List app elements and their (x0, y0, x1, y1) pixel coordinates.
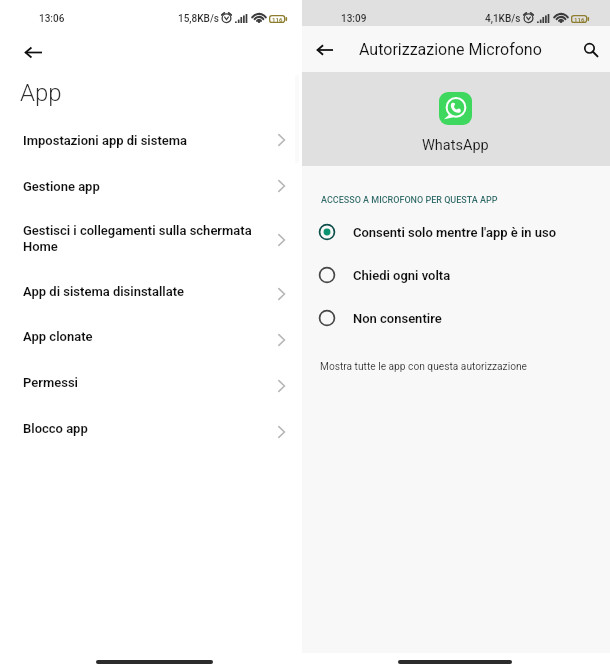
staticText: Gestisci i collegamenti sulla schermata … (23, 223, 263, 254)
staticText: Blocco app (23, 421, 88, 436)
button[interactable]: Permessi (0, 363, 302, 409)
button[interactable]: Blocco app (0, 409, 302, 455)
staticText: Permessi (23, 375, 78, 390)
button[interactable]: App clonate (0, 317, 302, 363)
staticText: App clonate (23, 329, 93, 344)
staticText: App di sistema disinstallate (23, 284, 185, 299)
staticText: Gestione app (23, 179, 100, 194)
staticText: 116 (272, 16, 283, 23)
staticText: Consenti solo mentre l'app è in uso (353, 225, 557, 240)
button[interactable]: Mostra tutte le app con questa autorizza… (320, 361, 527, 373)
staticText: 13:06 (39, 13, 65, 25)
staticText: 15,8KB/s (178, 13, 219, 25)
staticText: Non consentire (353, 311, 442, 326)
button[interactable]: Non consentire (302, 296, 610, 339)
button[interactable]: App di sistema disinstallate (0, 271, 302, 317)
button[interactable]: Back (18, 37, 48, 67)
staticText: Autorizzazione Microfono (359, 40, 542, 59)
staticText: 116 (574, 16, 585, 23)
staticText: 13:09 (341, 13, 367, 25)
button[interactable]: Search (576, 35, 606, 65)
staticText: Chiedi ogni volta (353, 268, 451, 283)
staticText: Impostazioni app di sistema (23, 133, 188, 148)
staticText: 4,1KB/s (485, 13, 521, 25)
button[interactable]: Consenti solo mentre l'app è in uso (302, 210, 610, 253)
staticText: ACCESSO A MICROFONO PER QUESTA APP (321, 195, 498, 206)
button[interactable]: Gestione app (0, 163, 302, 209)
button[interactable]: Chiedi ogni volta (302, 253, 610, 296)
staticText: WhatsApp (422, 137, 489, 154)
staticText: App (20, 79, 62, 107)
button[interactable]: Back (310, 35, 340, 65)
button[interactable]: Impostazioni app di sistema (0, 117, 302, 163)
button[interactable]: Gestisci i collegamenti sulla schermata … (0, 209, 302, 271)
staticText: Mostra tutte le app con questa autorizza… (320, 361, 527, 373)
